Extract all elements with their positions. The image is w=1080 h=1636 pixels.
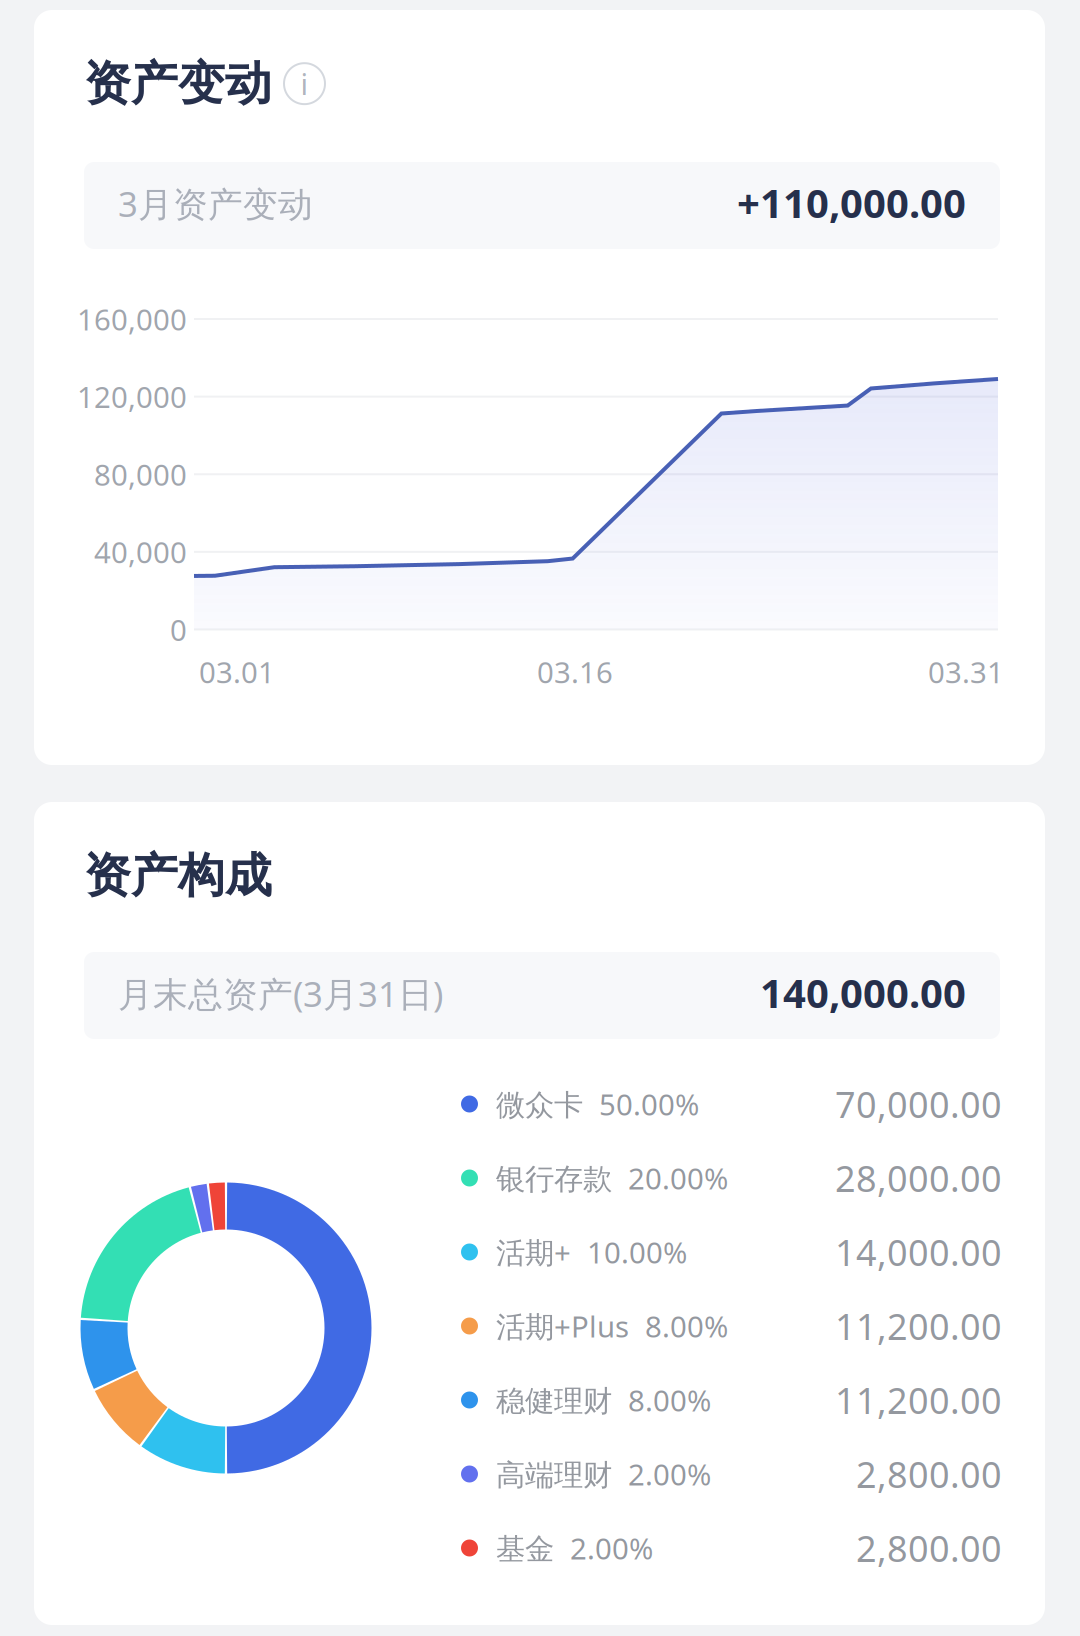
staticText: 银行存款 20.00% [478,1158,728,1197]
staticText: 160,000 [77,299,187,338]
staticText: 资产变动 [84,55,272,112]
staticText: 2,800.00 [856,1524,1002,1572]
staticText: 03.16 [537,652,613,691]
staticText: 70,000.00 [835,1080,1002,1128]
staticText: 微众卡 50.00% [478,1084,699,1123]
staticText: 基金 2.00% [478,1528,653,1567]
staticText: i [300,64,308,103]
staticText: 3月资产变动 [118,180,313,226]
staticText: 活期+ 10.00% [478,1232,687,1271]
staticText: 0 [170,610,187,649]
staticText: 11,200.00 [835,1302,1002,1350]
staticText: 03.31 [928,652,1004,691]
staticText: 120,000 [77,377,187,416]
staticText: 80,000 [94,455,187,494]
button[interactable]: 银行存款 20.00% [461,1141,1002,1215]
staticText: 高端理财 2.00% [478,1454,711,1493]
staticText: 资产构成 [84,847,272,904]
staticText: 活期+Plus 8.00% [478,1306,728,1345]
button[interactable]: 微众卡 50.00% [461,1067,1002,1141]
staticText: 2,800.00 [856,1450,1002,1498]
staticText: 11,200.00 [835,1376,1002,1424]
staticText: +110,000.00 [737,176,966,229]
staticText: 14,000.00 [835,1228,1002,1276]
staticText: 40,000 [94,532,187,571]
staticText: 03.01 [199,652,275,691]
staticText: 28,000.00 [835,1154,1002,1202]
button[interactable]: 活期+Plus 8.00% [461,1289,1002,1363]
staticText: 140,000.00 [760,966,966,1019]
button[interactable]: 高端理财 2.00% [461,1437,1002,1511]
button[interactable]: 说明 [284,63,325,104]
button[interactable]: 基金 2.00% [461,1511,1002,1585]
staticText: 月末总资产(3月31日) [118,970,443,1016]
button[interactable]: 活期+ 10.00% [461,1215,1002,1289]
button[interactable]: 稳健理财 8.00% [461,1363,1002,1437]
staticText: 稳健理财 8.00% [478,1380,711,1419]
